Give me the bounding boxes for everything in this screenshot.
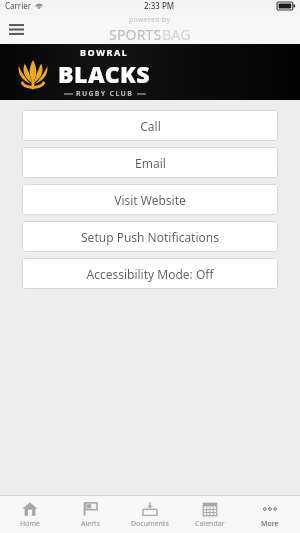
staticText: BAG bbox=[162, 25, 191, 44]
button[interactable]: Call bbox=[22, 110, 278, 141]
staticText: More bbox=[261, 519, 279, 529]
staticText: SPORTS bbox=[109, 25, 162, 44]
button[interactable]: Setup Push Notifications bbox=[22, 221, 278, 252]
staticText: Accessibility Mode: Off bbox=[86, 266, 214, 282]
button[interactable]: Documents bbox=[120, 501, 180, 529]
staticText: Visit Website bbox=[114, 192, 186, 208]
staticText: Calendar bbox=[195, 519, 225, 529]
staticText: Email bbox=[135, 155, 166, 171]
staticText: powered by bbox=[129, 15, 171, 25]
staticText: BLACKS bbox=[58, 58, 151, 89]
staticText: BOWRAL bbox=[80, 46, 129, 58]
staticText: Setup Push Notifications bbox=[81, 229, 219, 245]
staticText: Home bbox=[20, 519, 40, 529]
button[interactable]: Email bbox=[22, 147, 278, 178]
button[interactable]: Home bbox=[0, 501, 60, 529]
staticText: RUGBY CLUB bbox=[76, 89, 134, 99]
button[interactable]: More bbox=[240, 501, 300, 529]
button[interactable]: Menu bbox=[0, 15, 32, 44]
button[interactable]: Calendar bbox=[180, 501, 240, 529]
staticText: 2:33 PM bbox=[144, 0, 175, 11]
button[interactable]: Accessibility Mode: Off bbox=[22, 258, 278, 289]
button[interactable]: Visit Website bbox=[22, 184, 278, 215]
staticText: Documents bbox=[131, 519, 169, 529]
button[interactable]: Alerts bbox=[60, 501, 120, 529]
staticText: Alerts bbox=[81, 519, 100, 529]
staticText: Call bbox=[140, 118, 161, 134]
staticText: Carrier bbox=[5, 0, 32, 11]
